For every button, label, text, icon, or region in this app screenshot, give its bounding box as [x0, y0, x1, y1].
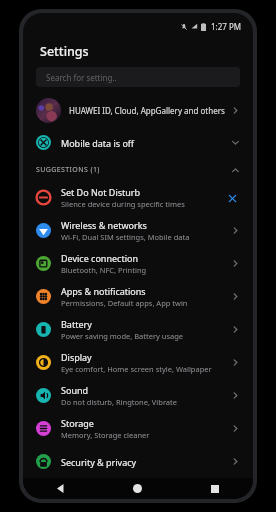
button[interactable]: SUGGESTIONS (1) — [23, 159, 253, 181]
button[interactable]: Storage — [23, 412, 253, 445]
staticText: Storage — [61, 417, 94, 429]
staticText: Bluetooth, NFC, Printing — [61, 265, 147, 275]
staticText: Battery — [61, 318, 92, 330]
button[interactable]: Wireless & networks — [23, 214, 253, 247]
button[interactable]: Home — [99, 478, 176, 499]
button[interactable]: Dismiss suggestion — [224, 190, 240, 206]
staticText: Mobile data is off — [61, 137, 135, 149]
staticText: Sound — [61, 384, 89, 396]
button[interactable]: Sound — [23, 379, 253, 412]
button[interactable]: Device connection — [23, 247, 253, 280]
staticText: Apps & notifications — [61, 285, 146, 297]
staticText: Wireless & networks — [61, 219, 147, 231]
button[interactable]: Display — [23, 346, 253, 379]
staticText: Display — [61, 351, 92, 363]
staticText: Settings — [40, 43, 89, 60]
staticText: 1:27 PM — [211, 21, 242, 32]
button[interactable]: Set Do Not Disturb — [23, 181, 253, 214]
staticText: Silence device during specific times — [61, 199, 185, 209]
staticText: Device connection — [61, 252, 138, 264]
staticText: HUAWEI ID, Cloud, AppGallery and others — [69, 105, 225, 116]
staticText: Wi-Fi, Dual SIM settings, Mobile data — [61, 232, 190, 242]
staticText: Search for setting.. — [46, 72, 117, 83]
button[interactable]: Recents — [176, 478, 253, 499]
staticText: Do not disturb, Ringtone, Vibrate — [61, 397, 178, 407]
button[interactable]: Battery — [23, 313, 253, 346]
button[interactable]: HUAWEI ID, Cloud, AppGallery and others — [23, 94, 253, 126]
button[interactable]: Apps & notifications — [23, 280, 253, 313]
staticText: SUGGESTIONS (1) — [36, 165, 100, 175]
button[interactable]: Security & privacy — [23, 445, 253, 478]
button[interactable]: Mobile data is off — [23, 126, 253, 159]
staticText: Set Do Not Disturb — [61, 186, 141, 198]
staticText: Security & privacy — [61, 456, 137, 468]
button[interactable]: Back — [23, 478, 99, 499]
staticText: Permissions, Default apps, App twin — [61, 298, 188, 308]
staticText: Power saving mode, Battery usage — [61, 331, 184, 341]
staticText: Memory, Storage cleaner — [61, 430, 150, 440]
button[interactable]: Search for setting.. — [36, 67, 240, 87]
staticText: Eye comfort, Home screen style, Wallpape… — [61, 364, 212, 374]
